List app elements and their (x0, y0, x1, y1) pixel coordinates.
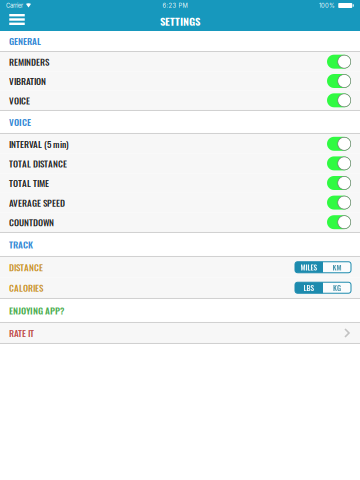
staticText: VIBRATION (9, 74, 46, 88)
button[interactable]: COUNTDOWN (0, 212, 360, 232)
button[interactable]: TOTAL DISTANCE (0, 154, 360, 173)
staticText: Carrier (6, 2, 23, 9)
staticText: KG (333, 282, 341, 293)
button[interactable]: Toggle on (327, 55, 351, 69)
staticText: COUNTDOWN (9, 215, 54, 229)
staticText: VOICE (9, 115, 31, 129)
staticText: KM (332, 262, 341, 273)
button[interactable]: Toggle on (327, 156, 351, 170)
button[interactable]: MILES (295, 262, 323, 273)
staticText: REMINDERS (9, 55, 49, 68)
button[interactable]: RATE IT (0, 323, 360, 343)
staticText: AVERAGE SPEED (9, 196, 65, 209)
staticText: TOTAL TIME (9, 176, 49, 190)
staticText: MILES (300, 262, 317, 273)
staticText: 6:23 PM (162, 2, 187, 9)
staticText: TOTAL DISTANCE (9, 157, 67, 170)
button[interactable]: KG (323, 282, 351, 293)
staticText: TRACK (9, 238, 33, 251)
button[interactable]: KM (323, 262, 351, 273)
staticText: ENJOYING APP? (9, 304, 64, 317)
button[interactable]: VIBRATION (0, 71, 360, 91)
staticText: INTERVAL (5 min) (9, 137, 69, 150)
staticText: 100% (319, 2, 335, 9)
button[interactable]: INTERVAL (5 min) (0, 134, 360, 154)
button[interactable]: LBS (295, 282, 323, 293)
button[interactable]: Toggle on (327, 137, 351, 151)
button[interactable]: VOICE (0, 91, 360, 110)
button[interactable]: Toggle on (327, 215, 351, 229)
staticText: LBS (303, 282, 314, 293)
button[interactable]: Toggle on (327, 93, 351, 107)
button[interactable]: Toggle on (327, 74, 351, 88)
staticText: SETTINGS (160, 13, 200, 29)
button[interactable]: CALORIES (0, 277, 360, 298)
staticText: DISTANCE (9, 260, 43, 274)
staticText: VOICE (9, 94, 30, 107)
button[interactable]: DISTANCE (0, 257, 360, 277)
staticText: RATE IT (9, 326, 34, 340)
button[interactable]: Toggle on (327, 196, 351, 210)
button[interactable]: TOTAL TIME (0, 173, 360, 193)
button[interactable]: REMINDERS (0, 52, 360, 71)
button[interactable]: AVERAGE SPEED (0, 193, 360, 212)
button[interactable]: Toggle on (327, 176, 351, 190)
staticText: GENERAL (9, 34, 41, 48)
button[interactable]: Menu (5, 9, 29, 32)
staticText: CALORIES (9, 281, 43, 294)
